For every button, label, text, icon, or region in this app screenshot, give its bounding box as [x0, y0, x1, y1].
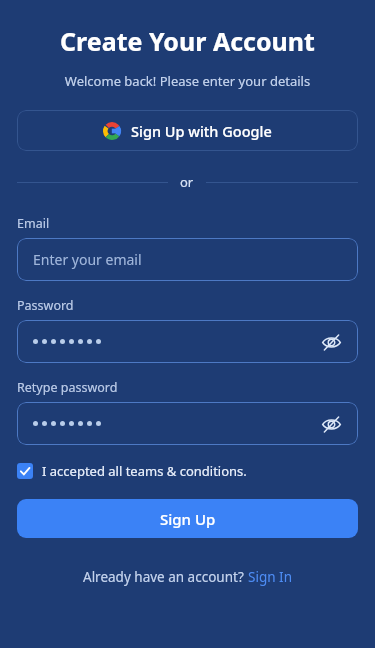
staticText: Retype password [17, 379, 118, 396]
button[interactable]: Toggle password visibility [318, 329, 344, 355]
button[interactable]: Toggle password visibility [17, 402, 358, 445]
button[interactable]: Toggle password visibility [17, 320, 358, 363]
button[interactable]: I accepted all teams & conditions. [17, 462, 247, 480]
staticText: Welcome back! Please enter your details [0, 72, 375, 90]
staticText: Sign Up with Google [131, 121, 272, 141]
staticText: I accepted all teams & conditions. [42, 462, 247, 480]
button[interactable]: Sign In [248, 568, 292, 586]
staticText: or [180, 173, 194, 191]
button[interactable]: Sign Up with Google [17, 110, 358, 151]
staticText: Email [17, 215, 50, 232]
staticText: Sign Up [160, 509, 216, 529]
staticText: Create Your Account [0, 24, 375, 58]
staticText: Enter your email [33, 250, 142, 269]
button[interactable]: Toggle password visibility [318, 411, 344, 437]
staticText: Already have an account? [83, 568, 248, 586]
staticText: Sign In [248, 568, 292, 586]
button[interactable]: Enter your email [17, 238, 358, 281]
staticText: Password [17, 297, 74, 314]
button[interactable]: Sign Up [17, 499, 358, 538]
